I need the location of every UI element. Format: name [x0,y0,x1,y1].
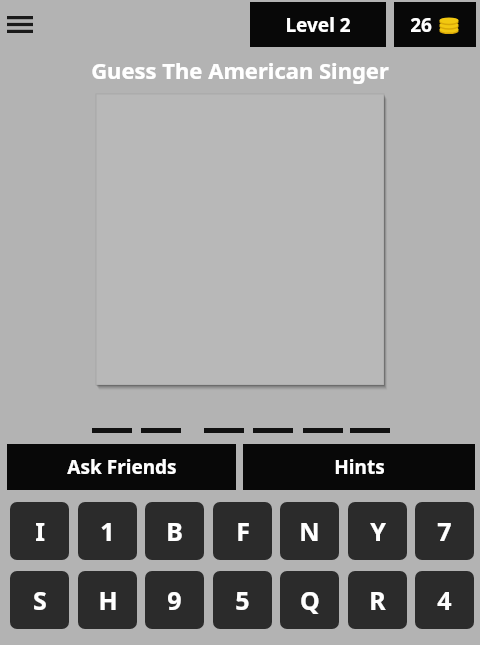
staticText: Y [370,514,386,548]
staticText: 5 [235,583,250,617]
staticText: I [35,514,45,548]
staticText: Level 2 [285,12,351,38]
button[interactable]: B [145,502,204,560]
button[interactable]: Hints [243,444,475,490]
staticText: 7 [437,514,452,548]
staticText: B [166,514,183,548]
button[interactable]: Ask Friends [7,444,236,490]
staticText: Hints [334,454,385,480]
button[interactable]: S [10,571,69,629]
button[interactable]: 26 [394,2,476,47]
staticText: H [98,583,118,617]
staticText: 1 [100,514,115,548]
button[interactable]: 5 [213,571,272,629]
staticText: S [33,583,47,617]
staticText: Guess The American Singer [91,55,389,85]
staticText: Ask Friends [67,454,177,480]
button[interactable]: 4 [415,571,474,629]
button[interactable]: 1 [78,502,137,560]
button[interactable]: Level 2 [250,2,386,47]
staticText: 4 [437,583,452,617]
button[interactable]: R [348,571,407,629]
staticText: F [236,514,250,548]
button[interactable]: N [280,502,339,560]
button[interactable]: H [78,571,137,629]
staticText: 9 [167,583,182,617]
button[interactable]: Q [280,571,339,629]
button[interactable]: I [10,502,69,560]
button[interactable]: 9 [145,571,204,629]
staticText: R [369,583,386,617]
button[interactable]: F [213,502,272,560]
staticText: N [299,514,320,548]
staticText: 26 [410,12,432,38]
button[interactable]: Y [348,502,407,560]
button[interactable]: 7 [415,502,474,560]
button[interactable]: Menu [0,4,40,44]
staticText: Q [300,583,320,617]
